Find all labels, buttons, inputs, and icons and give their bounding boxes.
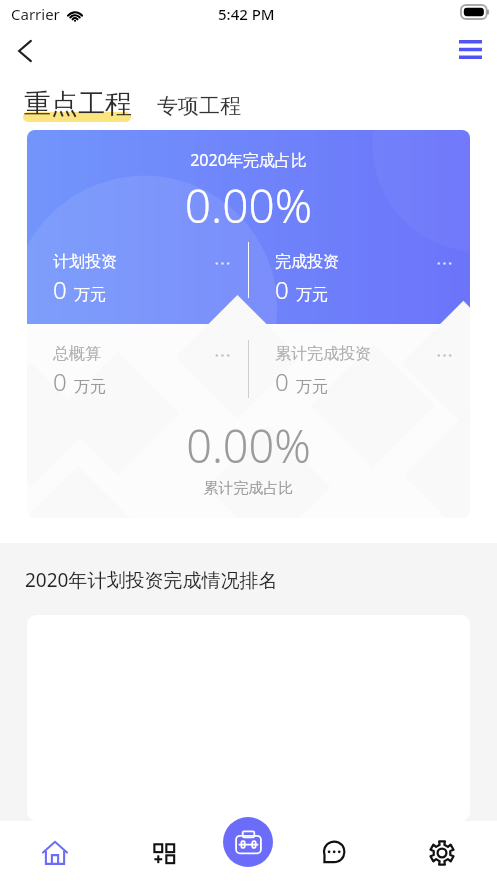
staticText: 重点工程	[24, 87, 132, 121]
button[interactable]: Settings	[419, 830, 465, 876]
staticText: 完成投资	[275, 252, 339, 272]
button[interactable]: 重点工程	[24, 87, 132, 121]
staticText: 万元	[74, 285, 106, 305]
staticText: 2020年计划投资完成情况排名	[25, 567, 278, 593]
staticText: 累计完成占比	[27, 479, 470, 498]
button[interactable]: Toolbox	[223, 817, 273, 867]
staticText: 0	[53, 273, 67, 306]
button[interactable]: 完成投资	[249, 240, 470, 318]
staticText: 0	[53, 365, 67, 398]
staticText: Carrier	[11, 4, 60, 24]
staticText: 总概算	[53, 344, 101, 364]
staticText: 0.00%	[27, 174, 470, 237]
button[interactable]: Messages	[310, 830, 356, 876]
staticText: 0	[275, 273, 289, 306]
button[interactable]: Apps	[141, 830, 187, 876]
staticText: 0	[275, 365, 289, 398]
staticText: 5:42 PM	[218, 4, 275, 24]
staticText: 2020年完成占比	[27, 149, 470, 171]
staticText: 累计完成投资	[275, 344, 371, 364]
button[interactable]	[27, 615, 470, 821]
staticText: 计划投资	[53, 252, 117, 272]
staticText: 万元	[296, 285, 328, 305]
button[interactable]: Home	[32, 830, 78, 876]
button[interactable]: Back	[5, 31, 45, 71]
staticText: 专项工程	[157, 93, 241, 119]
button[interactable]: Menu	[450, 29, 490, 69]
button[interactable]: 累计完成投资	[249, 332, 470, 414]
staticText: 0.00%	[27, 415, 470, 476]
button[interactable]: 总概算	[27, 332, 248, 414]
button[interactable]: 专项工程	[157, 91, 241, 117]
button[interactable]: 计划投资	[27, 240, 248, 318]
staticText: 万元	[74, 377, 106, 397]
staticText: 万元	[296, 377, 328, 397]
